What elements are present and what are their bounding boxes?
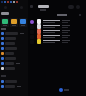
button[interactable] — [0, 66, 28, 71]
button[interactable] — [0, 36, 28, 41]
button[interactable] — [0, 51, 28, 56]
button[interactable]: Settings — [76, 5, 80, 9]
button[interactable] — [28, 24, 86, 29]
button[interactable] — [0, 56, 28, 61]
button[interactable]: Menu — [4, 6, 7, 9]
button[interactable] — [28, 39, 86, 44]
button[interactable]: Search — [20, 6, 23, 9]
button[interactable] — [19, 18, 27, 27]
button[interactable] — [10, 18, 18, 27]
button[interactable] — [0, 84, 28, 89]
button[interactable] — [1, 18, 9, 27]
button[interactable] — [28, 29, 86, 34]
button[interactable] — [0, 41, 28, 46]
button[interactable] — [28, 19, 86, 24]
button[interactable] — [0, 79, 28, 84]
button[interactable] — [0, 61, 28, 66]
button[interactable] — [0, 46, 28, 51]
button[interactable] — [0, 31, 28, 36]
button[interactable]: More options — [68, 5, 74, 9]
button[interactable] — [28, 34, 86, 39]
